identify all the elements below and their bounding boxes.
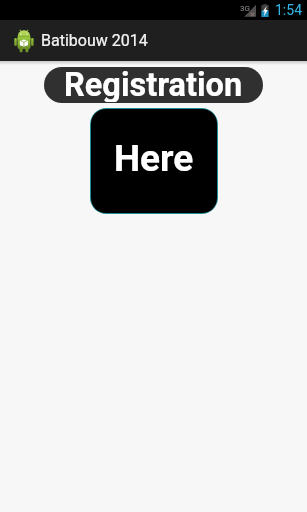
staticText: 3G bbox=[240, 4, 250, 13]
staticText: Registration bbox=[64, 67, 243, 102]
staticText: Here bbox=[114, 137, 194, 180]
staticText: Batibouw 2014 bbox=[41, 31, 148, 50]
other: App icon, go home bbox=[14, 29, 34, 53]
button[interactable]: Here bbox=[91, 109, 217, 213]
staticText: 1:54 bbox=[275, 2, 302, 18]
button[interactable]: Registration bbox=[44, 67, 263, 103]
button[interactable]: App icon, go home bbox=[0, 20, 156, 61]
